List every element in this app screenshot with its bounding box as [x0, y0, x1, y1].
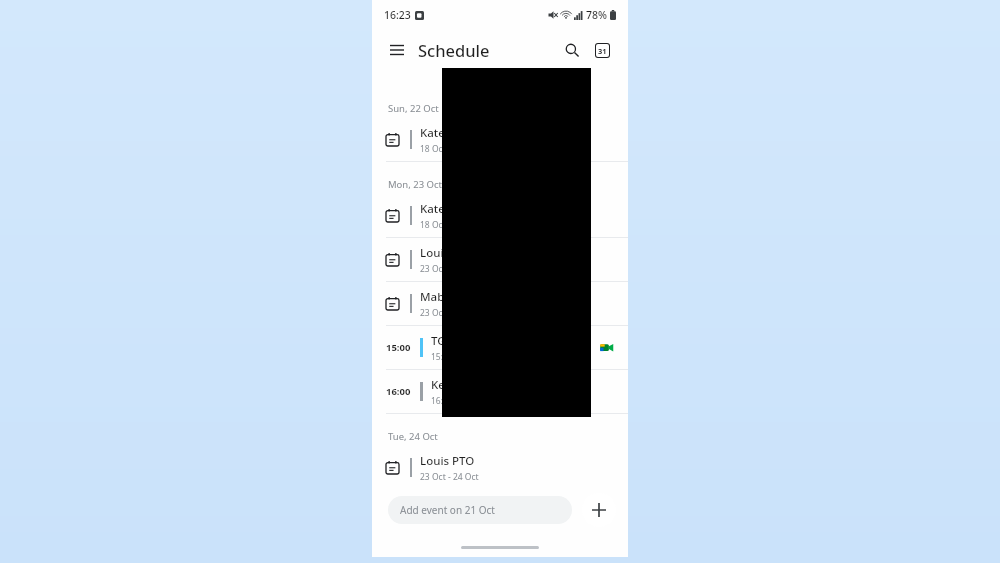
button[interactable]: 16:00	[372, 370, 628, 413]
button[interactable]: Kate PTO	[372, 194, 628, 237]
staticText: 18 Oct - 22 Oct	[420, 143, 479, 155]
staticText: Louis PTO	[420, 453, 475, 469]
staticText: 16:00	[386, 385, 411, 398]
staticText: Mon, 23 Oct	[388, 178, 442, 191]
staticText: 78%	[586, 8, 607, 22]
staticText: Add event on 21 Oct	[400, 503, 495, 517]
button[interactable]: Mabel PTO	[372, 282, 628, 325]
staticText: Kate PTO	[420, 201, 471, 217]
staticText: 15:00 - 15:30	[431, 351, 482, 363]
staticText: 16:00 - 16:30	[431, 395, 482, 407]
staticText: Mabel PTO	[420, 289, 480, 305]
staticText: 18 Oct - 22 Oct	[420, 219, 479, 231]
staticText: Kate PTO	[420, 125, 471, 141]
button[interactable]: Louis PTO	[372, 238, 628, 281]
button[interactable]: 15:00	[372, 326, 628, 369]
staticText: 31	[598, 46, 607, 56]
button[interactable]: Louis PTO	[372, 446, 628, 489]
staticText: Sun, 22 Oct	[388, 102, 439, 115]
staticText: Louis PTO	[420, 245, 475, 261]
button[interactable]: Add event on 21 Oct	[388, 496, 572, 524]
staticText: TG Sync	[431, 333, 474, 349]
staticText: 23 Oct - 25 Oct	[420, 307, 479, 319]
staticText: 23 Oct - 24 Oct	[420, 471, 479, 483]
staticText: 16:23	[384, 8, 411, 22]
staticText: Tue, 24 Oct	[388, 430, 438, 443]
button[interactable]: Kate PTO	[372, 118, 628, 161]
staticText: Kelly 1:1	[431, 377, 477, 393]
button[interactable]: Search	[560, 38, 584, 62]
staticText: Schedule	[418, 39, 490, 61]
staticText: 23 Oct - 24 Oct	[420, 263, 479, 275]
staticText: 15:00	[386, 341, 411, 354]
button[interactable]: Today, 31	[590, 38, 614, 62]
button[interactable]: Create event	[582, 493, 616, 527]
button[interactable]: Open navigation menu	[386, 39, 408, 61]
